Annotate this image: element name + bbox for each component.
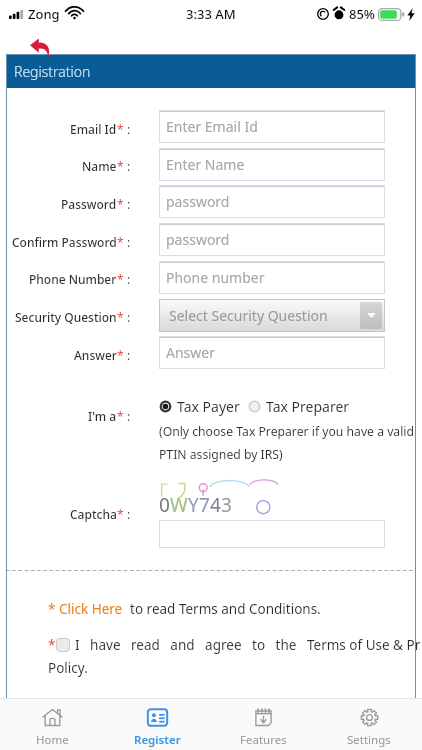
staticText: 7 [199, 492, 210, 518]
button[interactable]: Phone number [159, 261, 385, 294]
staticText: password [166, 230, 230, 249]
staticText: Name [82, 158, 117, 174]
button[interactable]: password [159, 223, 385, 256]
staticText: Tax Payer [177, 397, 240, 416]
staticText: I have read and agree to the Terms of Us… [75, 636, 421, 654]
staticText: Y [188, 492, 199, 518]
staticText: Select Security Question [169, 306, 328, 325]
staticText: 4 [210, 492, 221, 518]
button[interactable]: * Click Here [48, 600, 123, 618]
staticText: Tax Preparer [266, 397, 350, 416]
staticText: * [117, 271, 124, 287]
staticText: : [124, 309, 131, 325]
staticText: * [117, 347, 124, 363]
button[interactable]: Home [0, 699, 105, 750]
button[interactable]: Answer [159, 336, 385, 369]
staticText: password [166, 192, 230, 211]
staticText: Zong [28, 5, 60, 23]
staticText: Email Id [70, 121, 117, 137]
staticText: Answer [166, 343, 215, 362]
staticText: Settings [347, 732, 391, 748]
staticText: * [117, 408, 124, 424]
button[interactable]: Register [105, 699, 210, 750]
staticText: 3:33 AM [186, 5, 236, 23]
staticText: : [124, 234, 131, 250]
staticText: : [124, 347, 131, 363]
button[interactable]: Enter Name [159, 148, 385, 181]
staticText: 85% [349, 5, 375, 23]
staticText: to read Terms and Conditions. [123, 600, 321, 618]
staticText: Phone number [166, 268, 265, 287]
staticText: PTIN assigned by IRS) [159, 446, 283, 463]
staticText: * [117, 506, 124, 522]
staticText: (Only choose Tax Preparer if you have a … [159, 423, 414, 440]
staticText: * Click Here [48, 600, 123, 618]
button[interactable]: Enter Email Id [159, 110, 385, 143]
staticText: Password [61, 196, 117, 212]
staticText: * [117, 196, 124, 212]
button[interactable]: Tax Preparer [248, 397, 350, 416]
button[interactable]: Back [30, 38, 51, 58]
button[interactable]: Select Security Question [159, 299, 385, 332]
button[interactable]: password [159, 185, 385, 218]
staticText: * [117, 234, 124, 250]
staticText: Enter Name [166, 155, 245, 174]
button[interactable]: Settings [316, 699, 422, 750]
staticText: 3 [221, 492, 232, 518]
staticText: * [48, 636, 56, 654]
staticText: : [124, 506, 131, 522]
staticText: Policy. [48, 659, 88, 677]
staticText: Answer [74, 347, 117, 363]
staticText: * [117, 121, 124, 137]
staticText: Phone Number [29, 271, 117, 287]
staticText: * [117, 309, 124, 325]
button[interactable]: Tax Payer [159, 397, 240, 416]
button[interactable]: Features [210, 699, 316, 750]
staticText: Security Question [15, 309, 117, 325]
staticText: Home [36, 732, 69, 748]
staticText: W [170, 492, 188, 518]
staticText: : [124, 196, 131, 212]
staticText: : [124, 158, 131, 174]
staticText: Confirm Password [12, 234, 117, 250]
staticText: * [117, 158, 124, 174]
staticText: I'm a [88, 408, 117, 424]
staticText: 0 [159, 492, 170, 518]
button[interactable] [159, 520, 385, 548]
staticText: Registration [14, 62, 91, 81]
staticText: Register [134, 732, 181, 748]
staticText: : [124, 121, 131, 137]
staticText: Captcha [70, 506, 117, 522]
staticText: Features [240, 732, 287, 748]
button[interactable] [56, 638, 70, 652]
staticText: : [124, 408, 131, 424]
staticText: : [124, 271, 131, 287]
staticText: Enter Email Id [166, 117, 258, 136]
